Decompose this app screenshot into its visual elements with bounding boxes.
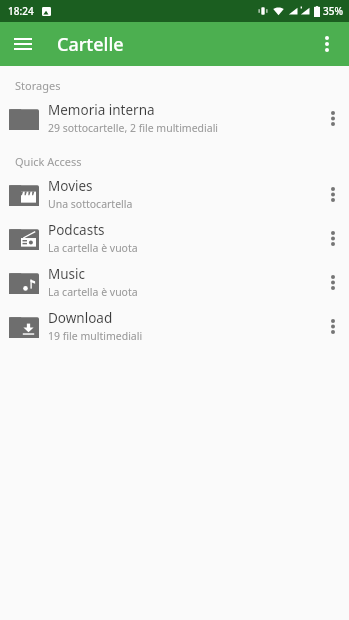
button[interactable]: Movies bbox=[0, 172, 349, 216]
staticText: Music bbox=[48, 265, 86, 283]
staticText: Download bbox=[48, 309, 113, 327]
staticText: Una sottocartella bbox=[48, 197, 133, 211]
staticText: La cartella è vuota bbox=[48, 285, 138, 299]
button[interactable]: Open navigation drawer bbox=[6, 27, 40, 61]
staticText: Storages bbox=[15, 78, 61, 93]
button[interactable]: More options bbox=[311, 28, 343, 60]
button[interactable]: Memoria interna bbox=[0, 96, 349, 140]
staticText: 18:24 bbox=[8, 4, 34, 18]
button[interactable]: More options for Download bbox=[317, 304, 349, 348]
button[interactable]: More options for Memoria interna bbox=[317, 96, 349, 140]
staticText: Movies bbox=[48, 177, 93, 195]
staticText: 29 sottocartelle, 2 file multimediali bbox=[48, 121, 219, 135]
staticText: Podcasts bbox=[48, 221, 105, 239]
button[interactable]: More options for Music bbox=[317, 260, 349, 304]
button[interactable]: Podcasts bbox=[0, 216, 349, 260]
staticText: Memoria interna bbox=[48, 101, 155, 119]
button[interactable]: Download bbox=[0, 304, 349, 348]
staticText: Quick Access bbox=[15, 154, 82, 169]
staticText: La cartella è vuota bbox=[48, 241, 138, 255]
button[interactable]: Music bbox=[0, 260, 349, 304]
staticText: 19 file multimediali bbox=[48, 329, 143, 343]
button[interactable]: More options for Movies bbox=[317, 172, 349, 216]
staticText: 35% bbox=[323, 4, 343, 18]
staticText: Cartelle bbox=[57, 32, 124, 57]
button[interactable]: More options for Podcasts bbox=[317, 216, 349, 260]
